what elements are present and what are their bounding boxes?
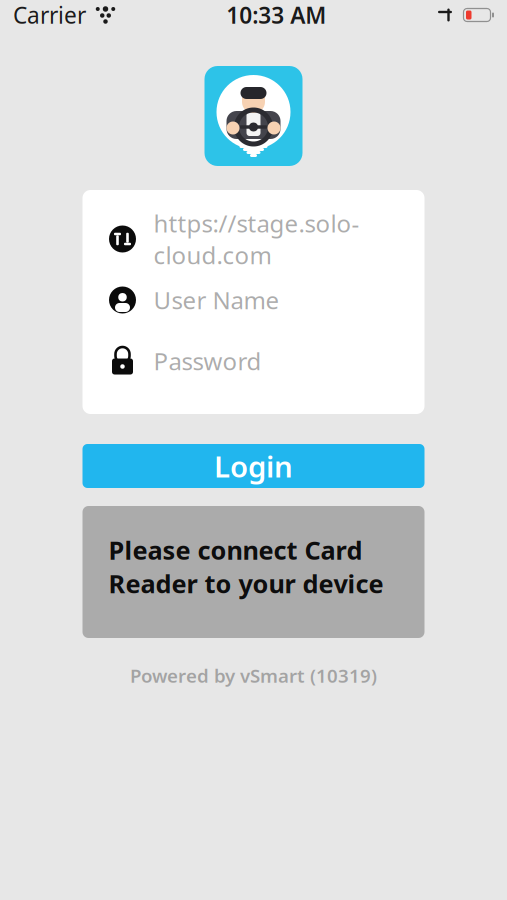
staticText: https://stage.solo-cloud.com xyxy=(153,207,359,271)
staticText: Powered by vSmart (10319) xyxy=(130,663,377,688)
staticText: 10:33 AM xyxy=(226,0,326,30)
button[interactable]: https://stage.solo-cloud.com xyxy=(82,224,424,254)
staticText: Password xyxy=(153,345,261,377)
button[interactable]: Password xyxy=(82,346,424,376)
staticText: Carrier xyxy=(13,0,86,30)
staticText: Login xyxy=(214,446,293,485)
staticText: Please connect Card Reader to your devic… xyxy=(108,533,383,600)
button[interactable]: Login xyxy=(82,444,424,488)
staticText: User Name xyxy=(153,284,279,316)
button[interactable]: User Name xyxy=(82,285,424,315)
